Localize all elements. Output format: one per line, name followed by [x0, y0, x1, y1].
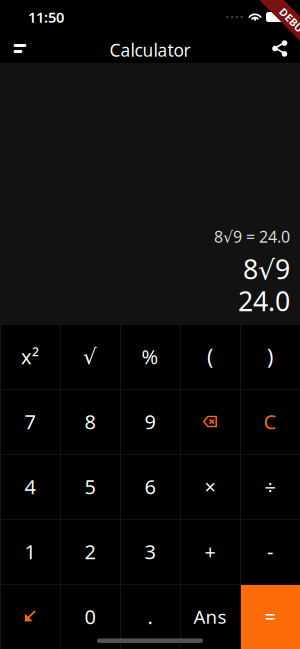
staticText: 1	[24, 538, 35, 565]
staticText: =	[264, 603, 275, 630]
button[interactable]	[180, 389, 240, 454]
staticText: 6	[144, 473, 155, 500]
staticText: -	[267, 538, 273, 565]
button[interactable]: ÷	[240, 454, 300, 519]
staticText: 4	[24, 473, 35, 500]
staticText: Calculator	[109, 38, 190, 61]
staticText: 5	[84, 473, 95, 500]
button[interactable]: 7	[0, 389, 60, 454]
staticText: %	[141, 343, 158, 370]
staticText: 24.0	[238, 283, 290, 319]
staticText: )	[267, 342, 273, 371]
button[interactable]: 8	[60, 389, 120, 454]
button[interactable]: +	[180, 519, 240, 584]
staticText: √	[83, 344, 97, 369]
button[interactable]: 5	[60, 454, 120, 519]
button[interactable]: ×	[180, 454, 240, 519]
button[interactable]: )	[240, 324, 300, 389]
button[interactable]: =	[240, 584, 300, 649]
staticText: 7	[24, 408, 35, 435]
staticText: 8	[84, 408, 95, 435]
button[interactable]: x²	[0, 324, 60, 389]
staticText: Ans	[193, 604, 226, 629]
button[interactable]: %	[120, 324, 180, 389]
staticText: ÷	[264, 473, 275, 500]
staticText: +	[204, 538, 215, 565]
button[interactable]: 2	[60, 519, 120, 584]
button[interactable]: Share	[262, 33, 298, 63]
button[interactable]: √	[60, 324, 120, 389]
button[interactable]: 1	[0, 519, 60, 584]
staticText: DEBUG	[279, 7, 300, 21]
staticText: 11:50	[28, 7, 64, 27]
staticText: .	[147, 603, 152, 630]
staticText: 9	[144, 408, 155, 435]
button[interactable]: 9	[120, 389, 180, 454]
staticText: ×	[204, 473, 215, 500]
button[interactable]: (	[180, 324, 240, 389]
button[interactable]: .	[120, 584, 180, 649]
button[interactable]	[0, 584, 60, 649]
button[interactable]: C	[240, 389, 300, 454]
staticText: 2	[84, 538, 95, 565]
staticText: C	[263, 408, 276, 435]
button[interactable]: -	[240, 519, 300, 584]
staticText: 0	[84, 603, 95, 630]
staticText: 8√9	[243, 251, 290, 287]
staticText: x²	[21, 343, 39, 370]
button[interactable]: Ans	[180, 584, 240, 649]
button[interactable]: 4	[0, 454, 60, 519]
button[interactable]: 6	[120, 454, 180, 519]
button[interactable]: Menu	[2, 33, 38, 63]
staticText: 8√9 = 24.0	[214, 226, 290, 247]
staticText: 3	[144, 538, 155, 565]
button[interactable]: 3	[120, 519, 180, 584]
button[interactable]: 0	[60, 584, 120, 649]
staticText: (	[207, 342, 213, 371]
